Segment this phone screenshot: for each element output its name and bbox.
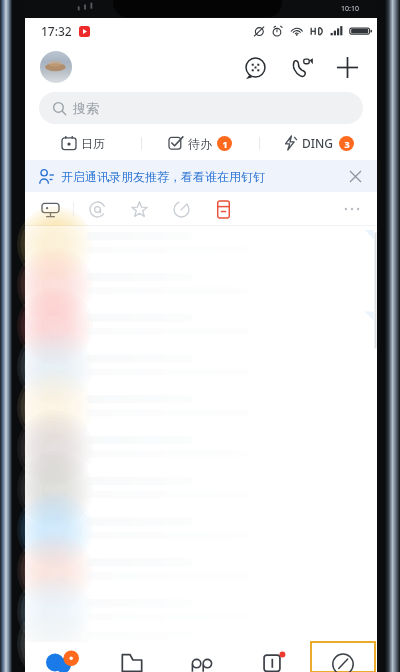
button[interactable]: Calendar filter bbox=[210, 196, 236, 222]
button[interactable]: More bbox=[339, 196, 365, 222]
button[interactable]: 开启通讯录朋友推荐，看看谁在用钉钉 bbox=[25, 160, 377, 192]
button[interactable]: Me bbox=[311, 642, 375, 672]
button[interactable]: Starred bbox=[126, 196, 152, 222]
staticText: 待办 bbox=[188, 136, 212, 151]
button[interactable]: Mentions bbox=[84, 196, 110, 222]
button[interactable]: Devices bbox=[37, 196, 63, 222]
staticText: 17:32 bbox=[41, 23, 72, 39]
staticText: 搜索 bbox=[73, 100, 99, 116]
button[interactable]: Add bbox=[332, 52, 362, 82]
button[interactable]: Unread bbox=[168, 196, 194, 222]
button[interactable]: Video call bbox=[287, 52, 317, 82]
staticText: 1 bbox=[222, 138, 228, 150]
button[interactable]: Workbench bbox=[237, 642, 307, 672]
button[interactable]: DING bbox=[260, 126, 377, 160]
button[interactable]: 搜索 bbox=[39, 92, 363, 124]
button[interactable]: Documents bbox=[96, 642, 167, 672]
button[interactable]: 日历 bbox=[25, 126, 141, 160]
staticText: DING bbox=[302, 135, 334, 151]
staticText: 日历 bbox=[81, 136, 105, 151]
button[interactable]: Messages bbox=[25, 642, 96, 672]
staticText: 开启通讯录朋友推荐，看看谁在用钉钉 bbox=[61, 169, 265, 184]
staticText: 3 bbox=[344, 138, 350, 150]
button[interactable]: 待办 bbox=[142, 126, 259, 160]
button[interactable]: Contacts bbox=[167, 642, 237, 672]
button[interactable]: Scan QR code bbox=[240, 52, 270, 82]
button[interactable]: Close banner bbox=[343, 164, 367, 188]
button[interactable]: Profile bbox=[40, 51, 72, 83]
staticText: 10:10 bbox=[341, 4, 359, 14]
